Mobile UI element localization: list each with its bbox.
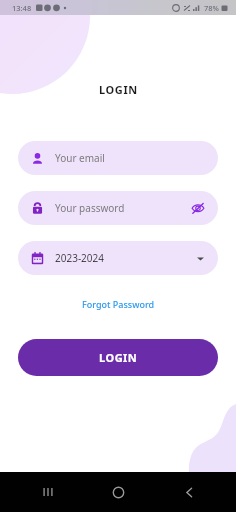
staticText: LOGIN — [99, 350, 138, 365]
other: Password — [31, 202, 44, 215]
other: Email — [31, 152, 44, 165]
button[interactable]: Forgot Password — [76, 295, 161, 313]
button[interactable]: Back — [166, 472, 212, 512]
button[interactable]: Academic year — [18, 241, 218, 275]
other: Academic year — [31, 252, 44, 265]
button[interactable]: Password — [18, 191, 218, 225]
button[interactable]: Home — [95, 472, 141, 512]
button[interactable]: LOGIN — [18, 339, 218, 376]
button[interactable]: Email — [18, 141, 218, 175]
staticText: 2023-2024 — [55, 251, 196, 265]
button[interactable]: Show password — [191, 201, 205, 215]
button[interactable]: Recent apps — [25, 472, 71, 512]
button[interactable]: Open year dropdown — [196, 254, 205, 263]
staticText: 78% — [204, 3, 219, 13]
staticText: Your password — [55, 201, 191, 215]
staticText: 13:48 — [12, 3, 32, 13]
staticText: Your email — [55, 151, 205, 165]
staticText: Forgot Password — [82, 298, 155, 310]
staticText: LOGIN — [99, 82, 138, 97]
